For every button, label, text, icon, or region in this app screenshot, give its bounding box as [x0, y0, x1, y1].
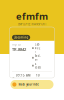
- staticText: 09:15 AM: [16, 74, 30, 77]
- staticText: efmfm: [16, 10, 48, 22]
- staticText: Trip ID: [12, 43, 21, 46]
- staticText: 4 seats: [35, 62, 41, 69]
- staticText: Upcoming: [14, 36, 29, 39]
- staticText: Sedan: [35, 54, 41, 61]
- button[interactable]: Track your ride: [10, 80, 53, 89]
- staticText: Cab 4021: [35, 43, 41, 53]
- staticText: TR-8842: [12, 47, 26, 52]
- staticText: Track your ride: [18, 83, 39, 86]
- staticText: Home pickup: [16, 77, 25, 84]
- staticText: 10:05 AM: [36, 74, 40, 88]
- staticText: EMPLOYEE TRANSPORT: [18, 22, 46, 26]
- staticText: Office drop: [36, 88, 40, 100]
